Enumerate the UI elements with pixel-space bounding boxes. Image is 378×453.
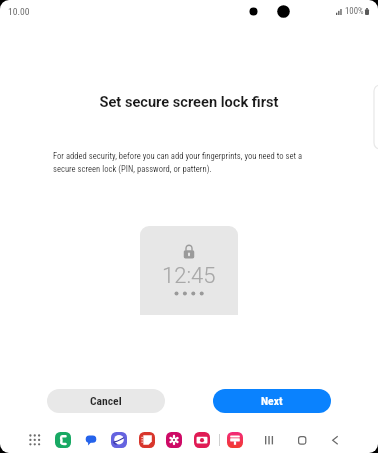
button[interactable]: Next [213, 389, 331, 413]
button[interactable]: App shortcut [55, 432, 71, 448]
button[interactable]: App shortcut [227, 432, 243, 448]
staticText: Set secure screen lock first [0, 93, 378, 110]
staticText: 100% [345, 6, 364, 16]
staticText: Cancel [90, 394, 122, 408]
button[interactable]: App shortcut [111, 432, 127, 448]
button[interactable]: App shortcut [166, 432, 182, 448]
button[interactable]: App shortcut [194, 432, 210, 448]
button[interactable]: App shortcut [83, 432, 99, 448]
staticText: 10.00 [8, 6, 30, 17]
button[interactable]: Home [294, 428, 311, 450]
button[interactable]: Cancel [47, 389, 165, 413]
staticText: 12:45 [162, 263, 216, 289]
button[interactable]: Back [328, 428, 345, 450]
staticText: For added security, before you can add y… [53, 151, 307, 174]
button[interactable]: App shortcut [139, 432, 155, 448]
staticText: Next [261, 394, 283, 408]
button[interactable]: Apps [28, 433, 41, 445]
button[interactable]: Recent apps [261, 428, 278, 450]
